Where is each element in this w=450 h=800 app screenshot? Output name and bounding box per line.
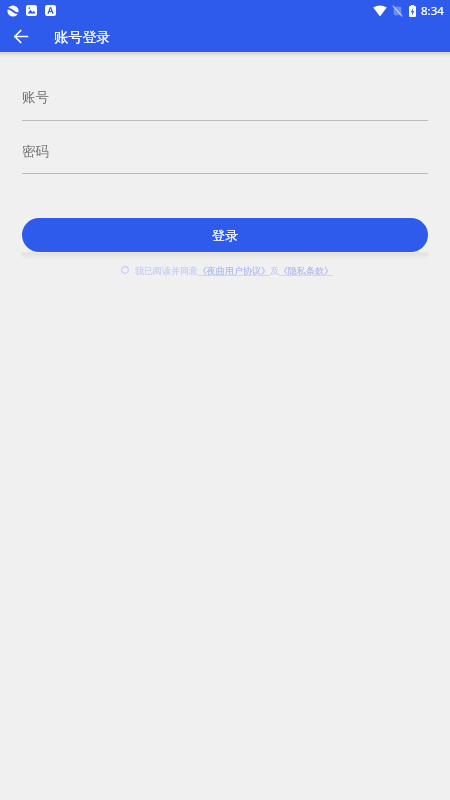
- staticText: 密码: [22, 143, 49, 160]
- staticText: 账号: [22, 89, 49, 106]
- button[interactable]: Agree to terms checkbox: [117, 262, 133, 278]
- staticText: 8:34: [421, 3, 444, 19]
- button[interactable]: 登录: [22, 218, 428, 252]
- button[interactable]: Back: [0, 21, 42, 52]
- button[interactable]: 账号: [22, 83, 428, 122]
- button[interactable]: 我已阅读并同意《夜曲用户协议》及《隐私条款》: [135, 265, 333, 276]
- button[interactable]: 密码: [22, 137, 428, 175]
- staticText: 登录: [212, 227, 238, 243]
- staticText: 账号登录: [54, 28, 111, 46]
